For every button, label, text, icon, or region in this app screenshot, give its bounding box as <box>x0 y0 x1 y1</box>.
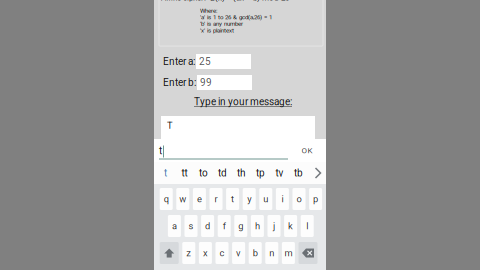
staticText: y <box>247 193 251 204</box>
button[interactable]: tt <box>175 162 194 184</box>
button[interactable]: j <box>267 215 280 237</box>
staticText: 'x' is plaintext <box>200 27 234 34</box>
button[interactable]: Delete <box>298 242 317 264</box>
button[interactable]: c <box>215 242 228 264</box>
button[interactable]: OK <box>291 139 323 162</box>
button[interactable]: p <box>309 188 322 210</box>
staticText: Type in your message: <box>194 96 292 108</box>
button[interactable]: i <box>276 188 289 210</box>
staticText: w <box>179 193 186 204</box>
button[interactable]: T <box>161 116 315 139</box>
button[interactable]: q <box>160 188 173 210</box>
button[interactable]: d <box>201 215 214 237</box>
button[interactable]: t <box>156 162 175 184</box>
button[interactable]: e <box>193 188 206 210</box>
button[interactable]: tv <box>270 162 289 184</box>
button[interactable]: s <box>184 215 197 237</box>
staticText: i <box>281 193 283 204</box>
staticText: 'b' is any number <box>200 20 243 27</box>
staticText: td <box>218 167 227 179</box>
staticText: c <box>219 247 224 258</box>
button[interactable]: g <box>234 215 247 237</box>
staticText: Affine cipher: E(x) = (ax + b) mod 26 <box>161 0 289 2</box>
staticText: 25 <box>199 56 211 67</box>
button[interactable]: h <box>251 215 264 237</box>
staticText: n <box>269 247 274 258</box>
staticText: tp <box>256 167 265 179</box>
staticText: th <box>237 167 246 179</box>
staticText: Enter a: <box>163 56 195 67</box>
button[interactable]: t <box>226 188 239 210</box>
staticText: b <box>253 247 258 258</box>
staticText: Where: <box>200 7 217 14</box>
button[interactable]: td <box>213 162 232 184</box>
button[interactable]: a <box>168 215 181 237</box>
staticText: a <box>172 220 177 231</box>
button[interactable]: y <box>243 188 256 210</box>
button[interactable]: k <box>284 215 297 237</box>
staticText: r <box>214 193 217 204</box>
staticText: z <box>186 247 191 258</box>
staticText: u <box>263 193 268 204</box>
button[interactable]: tb <box>289 162 308 184</box>
staticText: h <box>255 220 260 231</box>
button[interactable]: to <box>194 162 213 184</box>
button[interactable]: v <box>232 242 245 264</box>
button[interactable]: b <box>249 242 262 264</box>
button[interactable]: More suggestions <box>308 162 328 184</box>
staticText: s <box>188 220 193 231</box>
staticText: e <box>197 193 202 204</box>
staticText: t <box>164 167 167 179</box>
staticText: k <box>288 220 293 231</box>
button[interactable]: f <box>218 215 231 237</box>
staticText: m <box>284 247 292 258</box>
staticText: tb <box>294 167 303 179</box>
staticText: d <box>205 220 210 231</box>
staticText: OK <box>301 146 312 155</box>
staticText: T <box>167 120 173 131</box>
staticText: x <box>203 247 208 258</box>
staticText: to <box>199 167 208 179</box>
button[interactable]: 99 <box>197 75 252 90</box>
button[interactable]: z <box>182 242 195 264</box>
staticText: 'a' is 1 to 26 & gcd(a,26) = 1 <box>200 14 272 21</box>
button[interactable]: r <box>209 188 222 210</box>
button[interactable]: l <box>301 215 314 237</box>
staticText: q <box>164 193 169 204</box>
button[interactable]: tp <box>251 162 270 184</box>
staticText: f <box>223 220 226 231</box>
button[interactable]: o <box>292 188 305 210</box>
staticText: tt <box>181 167 187 179</box>
button[interactable]: w <box>176 188 189 210</box>
staticText: tv <box>275 167 283 179</box>
staticText: t <box>159 145 162 157</box>
staticText: Enter b: <box>163 77 196 88</box>
button[interactable]: 25 <box>196 54 251 69</box>
button[interactable]: t <box>154 139 294 162</box>
staticText: o <box>296 193 301 204</box>
button[interactable]: u <box>259 188 272 210</box>
staticText: g <box>238 220 243 231</box>
staticText: j <box>273 220 275 231</box>
button[interactable]: n <box>265 242 278 264</box>
button[interactable]: x <box>199 242 212 264</box>
staticText: l <box>306 220 308 231</box>
staticText: t <box>231 193 234 204</box>
button[interactable]: m <box>282 242 295 264</box>
button[interactable]: th <box>232 162 251 184</box>
staticText: v <box>236 247 241 258</box>
staticText: 99 <box>200 77 212 88</box>
staticText: p <box>313 193 318 204</box>
button[interactable]: Shift <box>160 242 179 264</box>
